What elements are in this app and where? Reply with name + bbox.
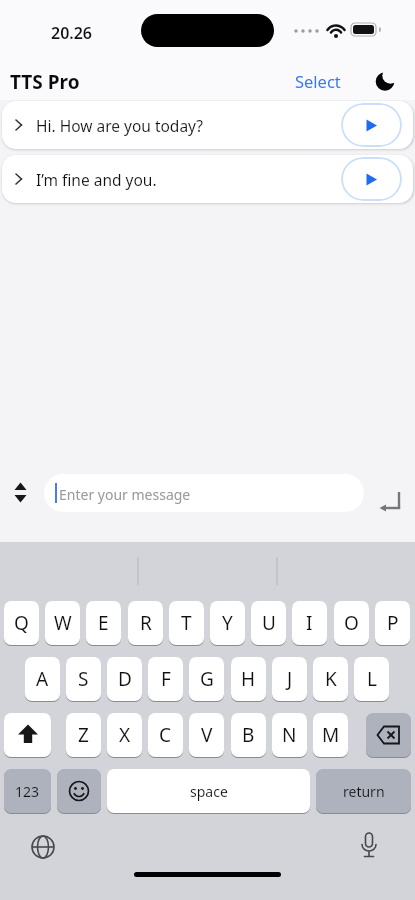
- staticText: A: [36, 666, 49, 692]
- staticText: L: [367, 666, 377, 692]
- button[interactable]: C: [148, 713, 183, 757]
- button[interactable]: U: [251, 601, 286, 645]
- staticText: 123: [15, 782, 40, 801]
- staticText: Q: [14, 610, 29, 636]
- staticText: X: [119, 722, 131, 748]
- staticText: F: [161, 666, 171, 692]
- staticText: C: [159, 722, 172, 748]
- button[interactable]: space: [107, 769, 310, 813]
- button[interactable]: [370, 66, 400, 96]
- staticText: Z: [78, 722, 89, 748]
- button[interactable]: E: [86, 601, 121, 645]
- button[interactable]: N: [272, 713, 307, 757]
- button[interactable]: M: [313, 713, 348, 757]
- staticText: N: [282, 722, 297, 748]
- button[interactable]: B: [231, 713, 266, 757]
- button[interactable]: [4, 713, 51, 757]
- button[interactable]: R: [128, 601, 163, 645]
- button[interactable]: [57, 769, 101, 813]
- button[interactable]: Y: [210, 601, 245, 645]
- staticText: 20.26: [51, 22, 93, 44]
- staticText: H: [241, 666, 256, 692]
- staticText: K: [325, 666, 337, 692]
- button[interactable]: S: [66, 657, 101, 701]
- button[interactable]: [341, 157, 402, 201]
- button[interactable]: H: [231, 657, 266, 701]
- button[interactable]: 123: [4, 769, 51, 813]
- staticText: TTS Pro: [10, 69, 80, 95]
- button[interactable]: [374, 482, 406, 514]
- button[interactable]: Q: [4, 601, 39, 645]
- button[interactable]: Enter your message: [44, 474, 364, 512]
- button[interactable]: T: [169, 601, 204, 645]
- staticText: Y: [222, 610, 233, 636]
- button[interactable]: [356, 831, 382, 863]
- button[interactable]: D: [107, 657, 142, 701]
- staticText: D: [118, 666, 132, 692]
- staticText: W: [54, 610, 72, 636]
- staticText: I: [306, 610, 313, 636]
- button[interactable]: G: [189, 657, 224, 701]
- staticText: R: [140, 610, 152, 636]
- staticText: Hi. How are you today?: [36, 115, 204, 136]
- staticText: U: [262, 610, 276, 636]
- staticText: space: [190, 782, 228, 801]
- button[interactable]: V: [189, 713, 224, 757]
- button[interactable]: F: [148, 657, 183, 701]
- button[interactable]: L: [354, 657, 389, 701]
- staticText: O: [344, 610, 359, 636]
- button[interactable]: K: [313, 657, 348, 701]
- staticText: I’m fine and you.: [36, 169, 157, 190]
- button[interactable]: P: [375, 601, 410, 645]
- button[interactable]: return: [316, 769, 411, 813]
- button[interactable]: Hi. How are you today?: [2, 101, 413, 149]
- staticText: S: [78, 666, 89, 692]
- button[interactable]: W: [45, 601, 80, 645]
- staticText: E: [98, 610, 109, 636]
- staticText: V: [201, 722, 213, 748]
- staticText: J: [287, 666, 293, 692]
- button[interactable]: [341, 103, 402, 147]
- button[interactable]: [366, 713, 411, 757]
- button[interactable]: Select: [288, 66, 348, 96]
- staticText: Enter your message: [59, 485, 191, 504]
- staticText: Select: [295, 70, 341, 92]
- button[interactable]: I: [292, 601, 327, 645]
- button[interactable]: X: [107, 713, 142, 757]
- button[interactable]: O: [334, 601, 369, 645]
- staticText: M: [322, 722, 340, 748]
- staticText: G: [200, 666, 214, 692]
- button[interactable]: Z: [66, 713, 101, 757]
- staticText: T: [181, 610, 192, 636]
- staticText: B: [242, 722, 255, 748]
- button[interactable]: [29, 833, 57, 861]
- staticText: return: [343, 782, 385, 801]
- staticText: P: [387, 610, 399, 636]
- button[interactable]: I’m fine and you.: [2, 155, 413, 203]
- button[interactable]: J: [272, 657, 307, 701]
- button[interactable]: A: [25, 657, 60, 701]
